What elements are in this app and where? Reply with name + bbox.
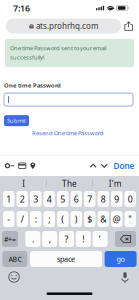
staticText: space: [57, 254, 75, 264]
button[interactable]: 9: [111, 191, 122, 207]
button[interactable]: ": [124, 211, 136, 227]
button[interactable]: I: [1, 176, 46, 191]
button[interactable]: &: [97, 211, 109, 227]
staticText: One time Password: [4, 81, 61, 89]
button[interactable]: 6: [70, 191, 82, 207]
staticText: $: [87, 213, 92, 225]
button[interactable]: Share: [124, 21, 133, 31]
button[interactable]: 0: [124, 191, 136, 207]
staticText: 3: [33, 193, 38, 205]
staticText: #+=: [4, 234, 16, 244]
staticText: ,: [49, 233, 51, 245]
button[interactable]: (: [57, 211, 68, 227]
staticText: successfully!: [10, 53, 45, 61]
button[interactable]: Credit cards: [18, 163, 26, 168]
staticText: I'm: [109, 178, 122, 189]
staticText: ": [128, 213, 132, 225]
staticText: &: [100, 213, 106, 225]
button[interactable]: !: [76, 231, 91, 247]
button[interactable]: Resend One time Password: [32, 129, 104, 137]
button[interactable]: 5: [57, 191, 68, 207]
button[interactable]: ats.prohrhq.com: [6, 18, 121, 33]
staticText: I: [22, 178, 25, 189]
staticText: 7:16: [13, 2, 30, 14]
staticText: 6: [74, 193, 79, 205]
staticText: ats.prohrhq.com: [36, 21, 98, 31]
button[interactable]: 3: [30, 191, 41, 207]
button[interactable]: Previous field: [89, 163, 97, 168]
button[interactable]: ’: [93, 231, 108, 247]
button[interactable]: 2: [16, 191, 28, 207]
staticText: ;: [48, 213, 50, 225]
button[interactable]: Done: [113, 160, 134, 171]
staticText: .: [32, 233, 34, 245]
staticText: ?: [64, 233, 68, 245]
staticText: 0: [128, 193, 133, 205]
button[interactable]: Delete: [115, 231, 136, 247]
button[interactable]: 8: [97, 191, 109, 207]
button[interactable]: space: [30, 251, 102, 267]
staticText: 7: [87, 193, 92, 205]
button[interactable]: -: [3, 211, 14, 227]
button[interactable]: .: [25, 231, 40, 247]
button[interactable]: ,: [42, 231, 57, 247]
staticText: ): [75, 213, 78, 225]
button[interactable]: ): [70, 211, 82, 227]
button[interactable]: Dictation: [116, 270, 134, 284]
button[interactable]: ?: [59, 231, 74, 247]
button[interactable]: @: [111, 211, 122, 227]
staticText: 9: [114, 193, 119, 205]
button[interactable]: Passwords: [5, 163, 14, 169]
staticText: 5: [60, 193, 65, 205]
button[interactable]: ABC: [2, 251, 27, 267]
staticText: Done: [113, 160, 134, 171]
button[interactable]: #+=: [2, 231, 18, 247]
button[interactable]: Contact info: [30, 162, 35, 169]
staticText: 8: [101, 193, 106, 205]
button[interactable]: I'm: [93, 176, 138, 191]
staticText: (: [61, 213, 64, 225]
button[interactable]: The: [47, 176, 92, 191]
staticText: 4: [47, 193, 52, 205]
staticText: ABC: [8, 254, 21, 264]
button[interactable]: Submit: [4, 115, 29, 126]
button[interactable]: Emoji: [5, 270, 23, 284]
staticText: One time Password sent to your email: [10, 44, 106, 52]
button[interactable]: :: [30, 211, 41, 227]
button[interactable]: Next field: [100, 163, 108, 168]
button[interactable]: ;: [43, 211, 55, 227]
button[interactable]: 1: [3, 191, 14, 207]
staticText: :: [35, 213, 37, 225]
staticText: Submit: [7, 117, 26, 124]
staticText: @: [113, 213, 121, 225]
staticText: /: [21, 213, 24, 225]
staticText: The: [62, 178, 77, 189]
button[interactable]: /: [16, 211, 28, 227]
button[interactable]: 7: [84, 191, 95, 207]
staticText: ’: [99, 233, 101, 245]
button[interactable]: $: [84, 211, 95, 227]
staticText: -: [7, 213, 10, 225]
staticText: 1: [6, 193, 11, 205]
button[interactable]: go: [105, 251, 137, 267]
button[interactable]: 4: [43, 191, 55, 207]
staticText: go: [117, 254, 125, 264]
staticText: !: [82, 233, 84, 245]
staticText: Resend One time Password: [32, 129, 104, 137]
staticText: 2: [20, 193, 25, 205]
